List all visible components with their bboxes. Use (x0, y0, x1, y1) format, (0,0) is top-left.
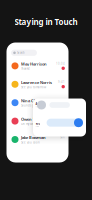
staticText: 10:03 (35, 126, 39, 127)
staticText: See you soon (21, 141, 40, 144)
staticText: May Harrison (21, 61, 47, 67)
button[interactable]: Lawrence Norris (6, 75, 68, 93)
staticText: Nina Clarke (21, 98, 43, 103)
staticText: Lawrence Norris (21, 80, 52, 85)
staticText: You (35, 122, 40, 125)
button[interactable]: Jake Bowman (6, 130, 68, 149)
staticText: Owen Wright (21, 116, 48, 122)
button[interactable]: May Harrison (6, 57, 68, 75)
staticText: Mon (59, 117, 65, 120)
staticText: Amy (35, 102, 41, 106)
staticText: 10:02 (35, 106, 39, 108)
staticText: 10:04 (56, 62, 65, 65)
staticText: Thanks! (21, 67, 30, 70)
staticText: Staying in Touch (14, 16, 77, 27)
staticText: Jake Bowman (21, 135, 46, 140)
staticText: On my way (21, 122, 34, 126)
staticText: Search (17, 51, 25, 54)
staticText: 9:41 (58, 80, 65, 84)
button[interactable]: Nina Clarke (6, 93, 68, 112)
staticText: Sun (60, 135, 65, 139)
staticText: Sounds good (21, 104, 40, 107)
staticText: See you tomorrow (21, 85, 46, 89)
button[interactable]: Owen Wright (6, 112, 68, 130)
